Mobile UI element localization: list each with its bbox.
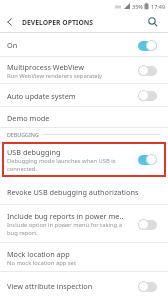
staticText: Run WebView renderers separately [7, 72, 102, 80]
staticText: USB debugging [7, 147, 61, 157]
button[interactable] [138, 90, 157, 101]
button[interactable]: USB debugging [0, 141, 168, 178]
button[interactable] [138, 40, 157, 51]
button[interactable] [138, 65, 157, 76]
staticText: 17:49 [151, 3, 166, 10]
button[interactable]: Demo mode [0, 107, 168, 128]
staticText: On [7, 40, 18, 50]
staticText: No mock location app set [7, 259, 76, 267]
staticText: Revoke USB debugging authorizations [7, 187, 139, 197]
button[interactable]: Multiprocess WebView [0, 57, 168, 84]
staticText: Include option in power menu for taking … [7, 221, 122, 229]
staticText: View attribute inspection [7, 281, 93, 291]
staticText: DEBUGGING [7, 131, 39, 138]
staticText: Mock location app [7, 249, 70, 259]
staticText: Debugging mode launches when USB is [7, 157, 116, 165]
staticText: bug report. [7, 229, 38, 237]
button[interactable] [143, 12, 163, 32]
button[interactable] [138, 154, 157, 165]
staticText: Demo mode [7, 113, 50, 123]
button[interactable]: Revoke USB debugging authorizations [0, 178, 168, 205]
staticText: Multiprocess WebView [7, 62, 85, 72]
staticText: Include bug reports in power me.. [7, 211, 124, 221]
staticText: connected. [7, 165, 37, 173]
staticText: 35% [132, 3, 143, 10]
staticText: Auto update system [7, 91, 76, 101]
button[interactable]: On [0, 33, 168, 57]
staticText: DEVELOPER OPTIONS [22, 18, 94, 27]
button[interactable]: Auto update system [0, 84, 168, 107]
button[interactable] [138, 219, 157, 230]
button[interactable]: Mock location app [0, 243, 168, 272]
button[interactable] [0, 12, 20, 32]
button[interactable]: Include bug reports in power me.. [0, 205, 168, 243]
button[interactable]: View attribute inspection [0, 272, 168, 300]
button[interactable] [138, 281, 157, 292]
